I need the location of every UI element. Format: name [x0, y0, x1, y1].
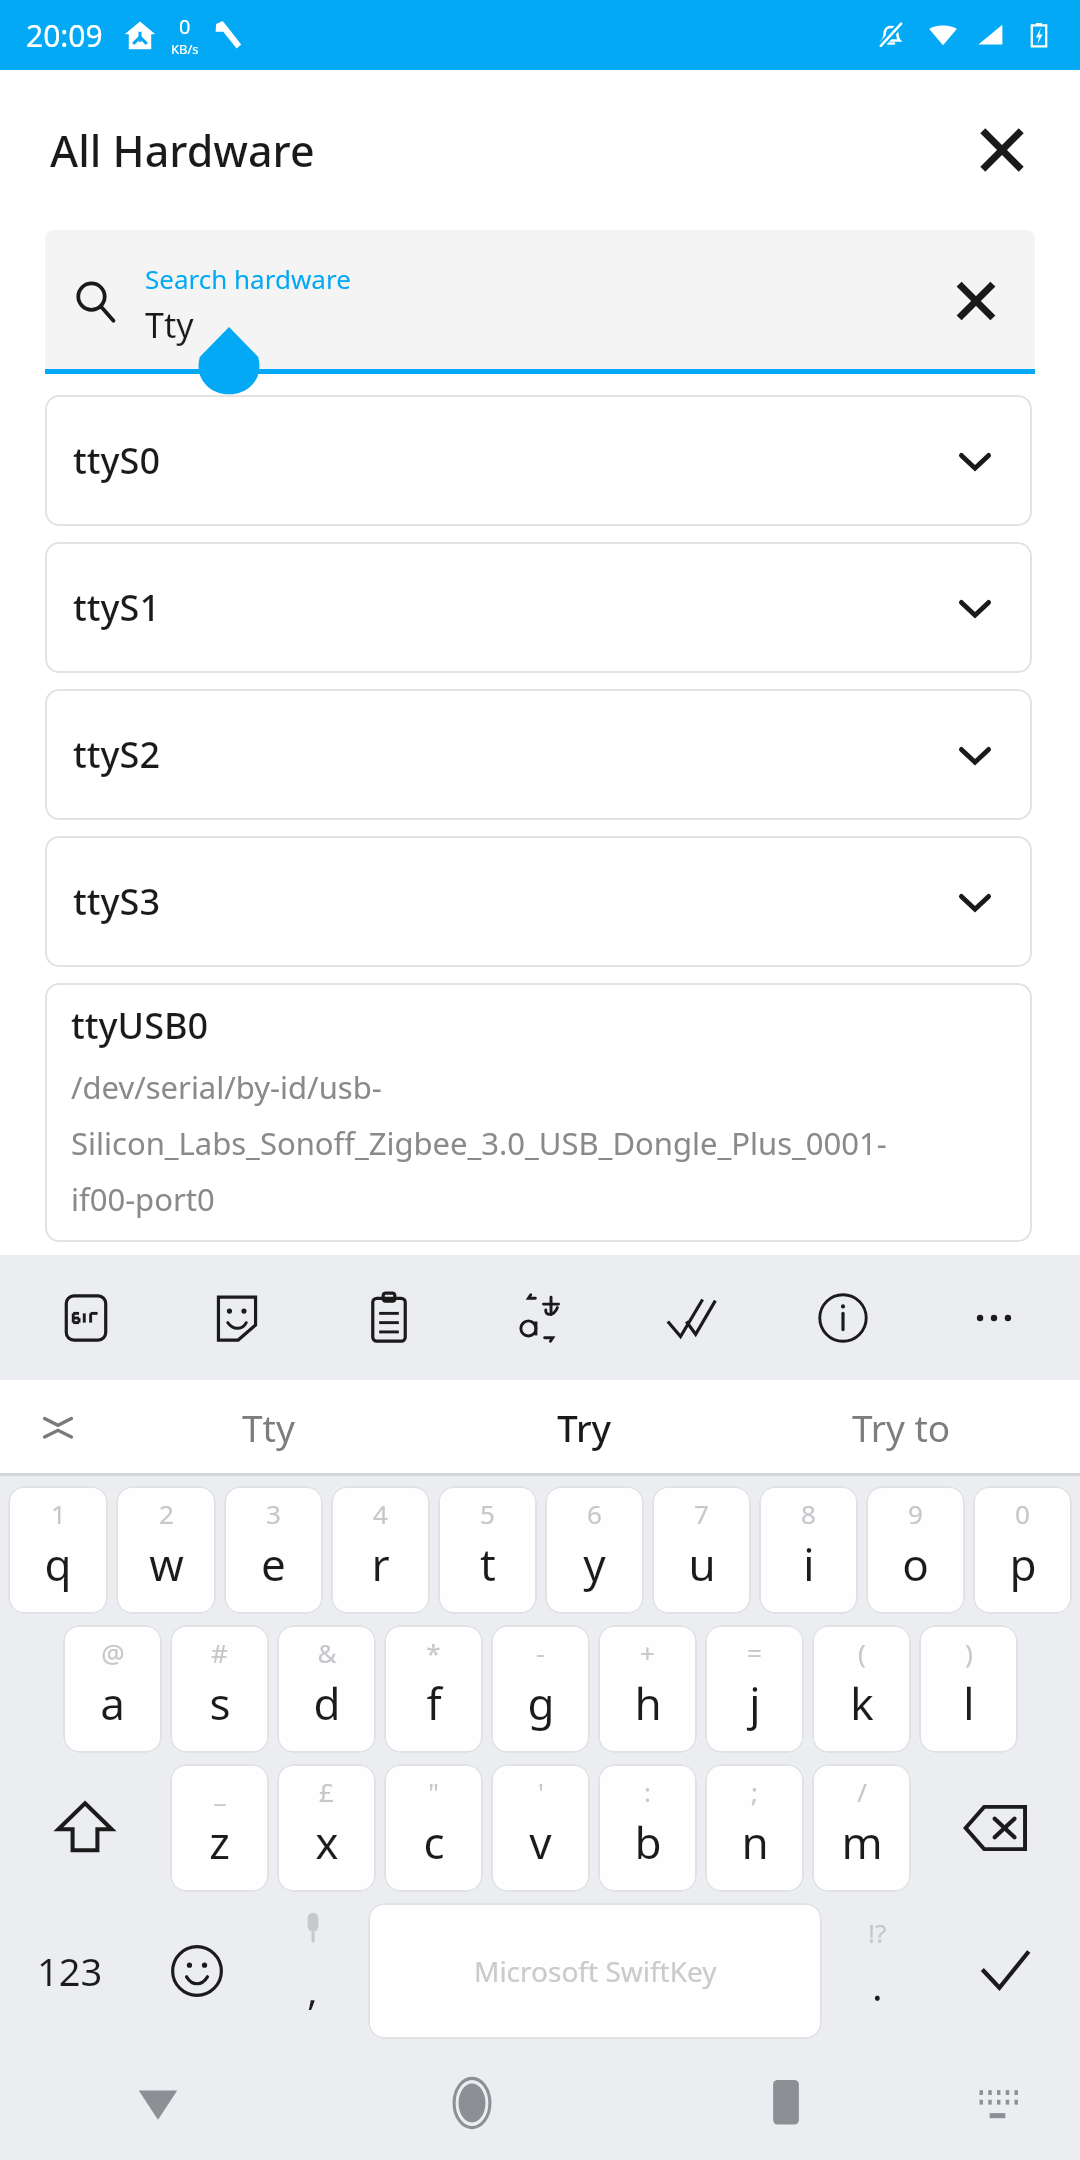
- staticText: u: [688, 1534, 716, 1594]
- staticText: v: [529, 1812, 552, 1872]
- staticText: =: [747, 1635, 762, 1670]
- button[interactable]: Stickers: [191, 1272, 283, 1364]
- button[interactable]: Emoji: [136, 1901, 257, 2041]
- button[interactable]: 3: [224, 1486, 323, 1614]
- button[interactable]: Back: [110, 2055, 206, 2151]
- button[interactable]: +: [598, 1625, 697, 1753]
- staticText: Search hardware: [145, 261, 351, 296]
- staticText: /: [857, 1774, 867, 1809]
- other: Search: [67, 273, 123, 329]
- button[interactable]: -: [491, 1625, 590, 1753]
- staticText: ttyS1: [73, 583, 160, 632]
- button[interactable]: Comma, voice input: [257, 1901, 368, 2041]
- button[interactable]: 5: [438, 1486, 537, 1614]
- button[interactable]: 2: [116, 1486, 216, 1614]
- button[interactable]: Clear search: [943, 268, 1009, 334]
- staticText: n: [741, 1812, 769, 1872]
- staticText: ): [965, 1635, 973, 1670]
- button[interactable]: 4: [331, 1486, 430, 1614]
- staticText: g: [527, 1673, 555, 1733]
- button[interactable]: Try to: [743, 1380, 1060, 1473]
- staticText: r: [371, 1534, 390, 1594]
- button[interactable]: 9: [866, 1486, 965, 1614]
- button[interactable]: ttyUSB0: [45, 983, 1032, 1242]
- button[interactable]: /: [812, 1764, 911, 1892]
- button[interactable]: Recent apps: [738, 2055, 834, 2151]
- button[interactable]: 0: [973, 1486, 1072, 1614]
- button[interactable]: @: [63, 1625, 162, 1753]
- button[interactable]: ttyS1: [45, 542, 1032, 673]
- staticText: 8: [801, 1496, 816, 1531]
- button[interactable]: ttyS3: [45, 836, 1032, 967]
- button[interactable]: Backspace: [915, 1762, 1076, 1894]
- staticText: &: [317, 1635, 337, 1670]
- button[interactable]: #: [170, 1625, 269, 1753]
- button[interactable]: ;: [705, 1764, 804, 1892]
- staticText: 20:09: [26, 15, 103, 56]
- staticText: #: [211, 1635, 228, 1670]
- button[interactable]: ttyS0: [45, 395, 1032, 526]
- staticText: £: [319, 1774, 334, 1809]
- staticText: c: [423, 1812, 445, 1872]
- staticText: +: [640, 1635, 655, 1670]
- button[interactable]: :: [598, 1764, 697, 1892]
- button[interactable]: 6: [545, 1486, 644, 1614]
- button[interactable]: Collapse suggestions: [20, 1389, 96, 1465]
- button[interactable]: =: [705, 1625, 804, 1753]
- button[interactable]: Shift: [4, 1762, 166, 1894]
- staticText: x: [315, 1812, 339, 1872]
- staticText: /dev/serial/by-id/usb-: [71, 1066, 382, 1108]
- staticText: 9: [908, 1496, 923, 1531]
- staticText: z: [209, 1812, 230, 1872]
- button[interactable]: Info: [797, 1272, 889, 1364]
- button[interactable]: Editing: [645, 1272, 737, 1364]
- staticText: !?: [868, 1915, 887, 1950]
- staticText: o: [902, 1534, 929, 1594]
- button[interactable]: More options: [948, 1272, 1040, 1364]
- staticText: Try to: [852, 1402, 951, 1452]
- staticText: ,: [307, 1962, 318, 2016]
- button[interactable]: Home: [424, 2055, 520, 2151]
- button[interactable]: _: [170, 1764, 269, 1892]
- button[interactable]: £: [277, 1764, 376, 1892]
- staticText: Silicon_Labs_Sonoff_Zigbee_3.0_USB_Dongl…: [71, 1122, 887, 1164]
- button[interactable]: &: [277, 1625, 376, 1753]
- staticText: 0: [179, 13, 191, 40]
- button[interactable]: 7: [652, 1486, 751, 1614]
- button[interactable]: (: [812, 1625, 911, 1753]
- button[interactable]: ': [491, 1764, 590, 1892]
- button[interactable]: Translate: [494, 1272, 586, 1364]
- staticText: 1: [51, 1496, 66, 1531]
- staticText: ttyS0: [73, 436, 160, 485]
- staticText: :: [644, 1774, 651, 1809]
- staticText: All Hardware: [50, 121, 315, 180]
- button[interactable]: *: [384, 1625, 483, 1753]
- staticText: -: [536, 1635, 545, 1670]
- button[interactable]: Tty: [110, 1380, 426, 1473]
- button[interactable]: ): [919, 1625, 1018, 1753]
- staticText: y: [583, 1534, 606, 1594]
- button[interactable]: Try: [426, 1380, 743, 1473]
- staticText: l: [963, 1673, 975, 1733]
- button[interactable]: Enter: [933, 1901, 1076, 2041]
- button[interactable]: Period, punctuation: [822, 1901, 933, 2041]
- button[interactable]: Clipboard: [343, 1272, 435, 1364]
- button[interactable]: GIF: [40, 1272, 132, 1364]
- staticText: _: [214, 1774, 226, 1809]
- staticText: j: [749, 1673, 761, 1733]
- staticText: t: [480, 1534, 496, 1594]
- button[interactable]: Switch keyboard: [954, 2060, 1040, 2146]
- staticText: ': [538, 1774, 544, 1809]
- staticText: i: [803, 1534, 815, 1594]
- staticText: Try: [557, 1402, 612, 1452]
- button[interactable]: Microsoft SwiftKey: [368, 1903, 822, 2039]
- button[interactable]: 8: [759, 1486, 858, 1614]
- button[interactable]: ": [384, 1764, 483, 1892]
- button[interactable]: 1: [8, 1486, 108, 1614]
- button[interactable]: Close: [966, 114, 1038, 186]
- button[interactable]: 123: [4, 1901, 136, 2041]
- staticText: k: [850, 1673, 874, 1733]
- button[interactable]: Search: [45, 230, 1035, 372]
- button[interactable]: ttyS2: [45, 689, 1032, 820]
- staticText: KB/s: [171, 40, 199, 58]
